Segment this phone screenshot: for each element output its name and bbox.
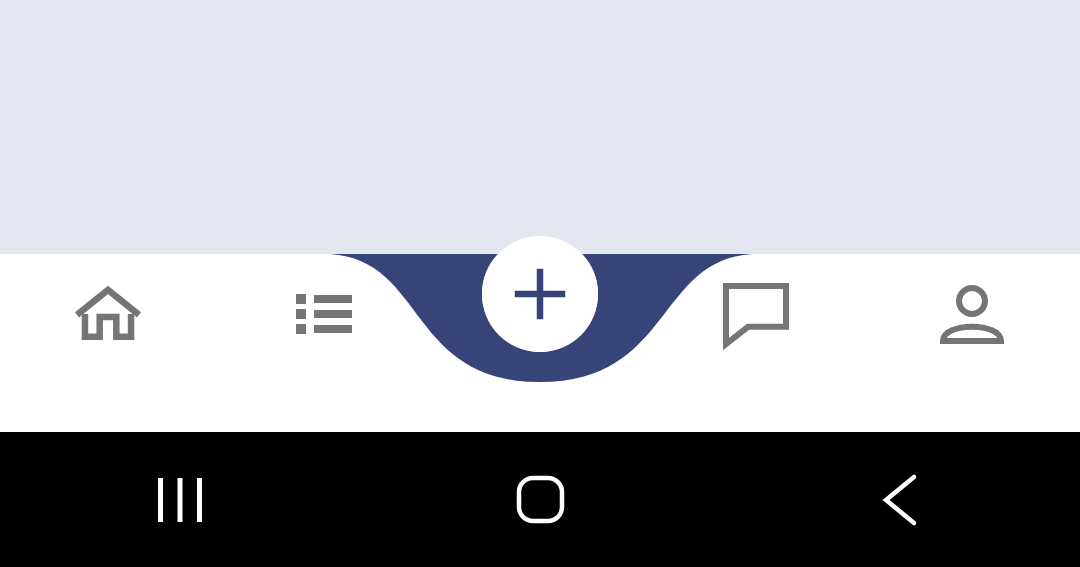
button[interactable]: Back xyxy=(720,432,1080,567)
button[interactable]: Home xyxy=(0,254,216,374)
button[interactable]: Home xyxy=(360,432,720,567)
button[interactable]: List xyxy=(216,254,432,374)
button[interactable]: Messages xyxy=(648,254,864,374)
button[interactable]: Profile xyxy=(864,254,1080,374)
button[interactable]: Recent apps xyxy=(0,432,360,567)
button[interactable]: Add xyxy=(482,236,598,352)
